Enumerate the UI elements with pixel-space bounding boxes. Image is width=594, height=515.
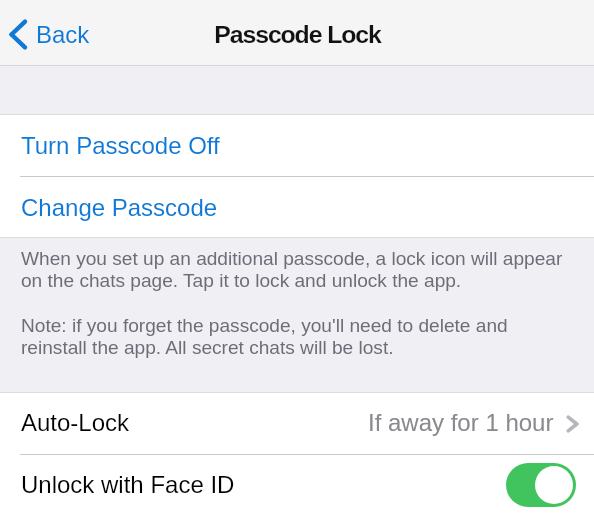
- staticText: Unlock with Face ID: [21, 471, 235, 498]
- button[interactable]: Turn Passcode Off: [0, 114, 594, 176]
- staticText: Note: if you forget the passcode, you'll…: [21, 314, 570, 358]
- button[interactable]: Change Passcode: [0, 176, 594, 238]
- staticText: Auto-Lock: [21, 409, 130, 436]
- staticText: Passcode Lock: [214, 21, 381, 49]
- staticText: Change Passcode: [21, 194, 218, 221]
- button[interactable]: Back: [0, 13, 100, 56]
- staticText: If away for 1 hour: [368, 409, 554, 436]
- staticText: When you set up an additional passcode, …: [21, 247, 570, 291]
- staticText: Back: [36, 21, 90, 48]
- button[interactable]: Unlock with Face ID: [506, 463, 576, 507]
- button[interactable]: Auto-Lock: [0, 392, 594, 454]
- staticText: Turn Passcode Off: [21, 132, 220, 159]
- button[interactable]: Unlock with Face ID: [0, 454, 594, 515]
